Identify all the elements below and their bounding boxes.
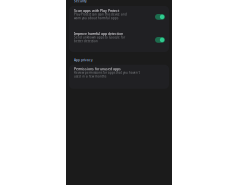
staticText: Scan apps with Play Protect <box>74 8 119 13</box>
staticText: App privacy <box>74 58 93 62</box>
staticText: Security <box>74 0 87 3</box>
button[interactable]: Permissions for unused apps <box>69 65 169 89</box>
button[interactable]: Scan apps with Play Protect <box>69 6 169 29</box>
staticText: better detection <box>74 39 98 43</box>
staticText: Improve harmful app detection <box>74 31 123 36</box>
button[interactable]: Improve harmful app detection <box>69 29 169 52</box>
staticText: Send unknown apps to Google for <box>74 35 125 39</box>
staticText: Review permissions for apps that you hav… <box>74 71 140 75</box>
staticText: Play Protect can scan this device and <box>74 12 127 16</box>
staticText: Permissions for unused apps <box>74 67 121 71</box>
staticText: warn you about harmful apps <box>74 16 118 20</box>
staticText: used in a few months <box>74 74 106 78</box>
